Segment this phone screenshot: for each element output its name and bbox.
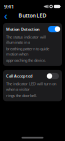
button[interactable]: Back — [1, 10, 10, 21]
button[interactable]: Motion Detection — [3, 23, 62, 34]
staticText: Motion Detection — [6, 26, 40, 32]
button[interactable]: Call Accepted — [3, 70, 62, 81]
staticText: ‹ — [4, 8, 7, 23]
staticText: The status indicator will illuminate in … — [6, 34, 46, 45]
staticText: The indicator LED will turn on when a vi… — [6, 81, 56, 92]
staticText: approaching the device. — [6, 58, 46, 63]
staticText: Button LED — [18, 12, 46, 19]
staticText: breathing pattern to quide motion when — [6, 46, 49, 56]
staticText: 9:41 — [4, 3, 14, 10]
staticText: rings the doorbell. — [6, 93, 37, 98]
staticText: Call Accepted — [6, 73, 33, 79]
